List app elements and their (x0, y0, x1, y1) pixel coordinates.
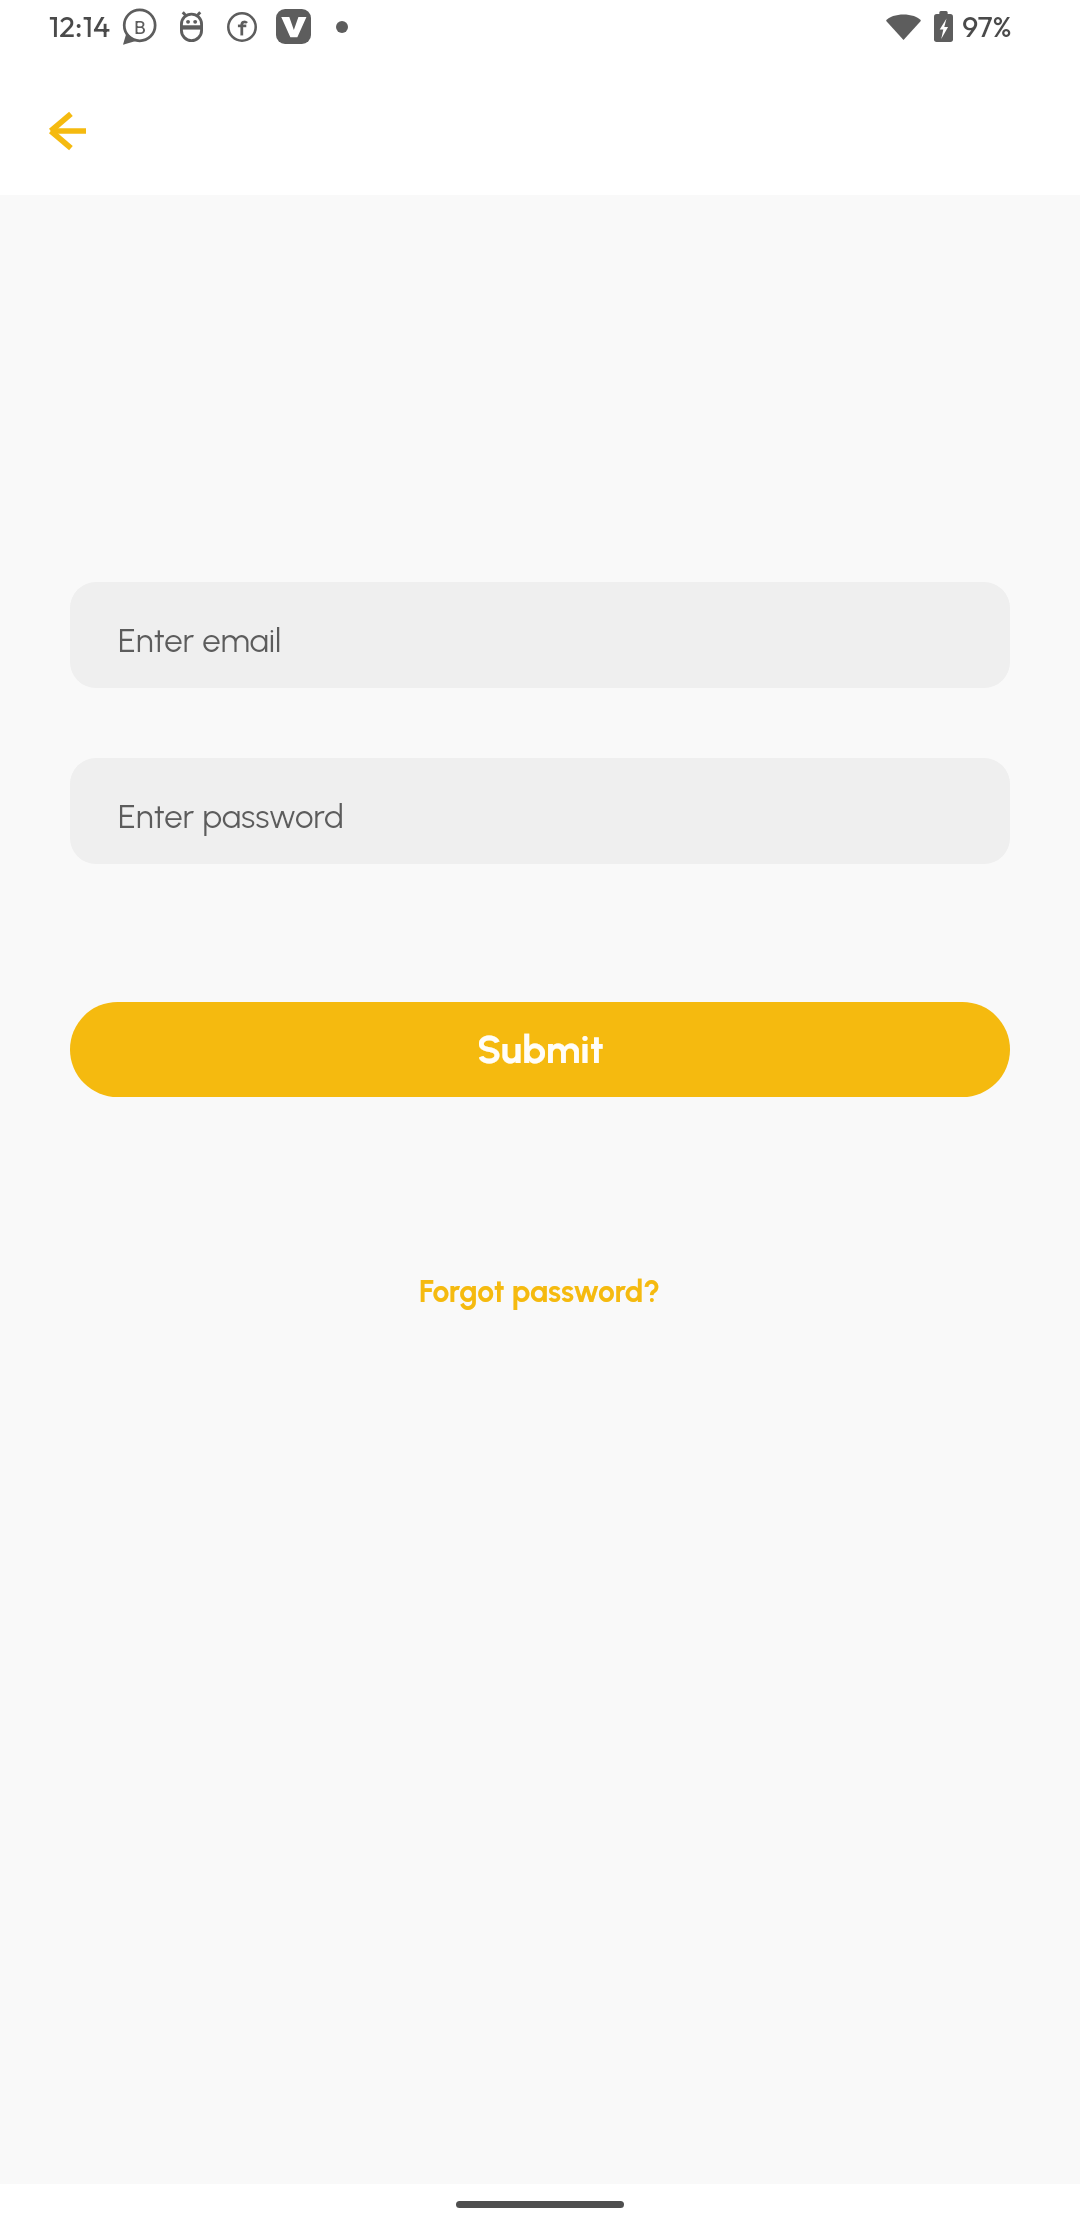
button[interactable]: Enter password (70, 758, 1010, 864)
staticText: 97% (962, 8, 1012, 45)
staticText: f (238, 14, 247, 40)
button[interactable]: Forgot password? (399, 1259, 681, 1323)
button[interactable]: Submit (70, 1002, 1010, 1097)
staticText: Enter password (118, 797, 344, 837)
staticText: Enter email (118, 621, 282, 661)
staticText: Forgot password? (419, 1273, 661, 1309)
button[interactable]: Enter email (70, 582, 1010, 688)
button[interactable]: Back (19, 83, 115, 179)
staticText: B (134, 15, 146, 39)
staticText: Submit (477, 1026, 604, 1073)
staticText: 12:14 (49, 8, 111, 45)
